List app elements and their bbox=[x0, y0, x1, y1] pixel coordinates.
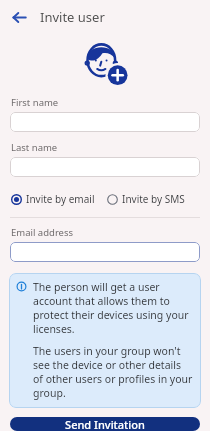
staticText: Invite by SMS bbox=[122, 192, 185, 206]
button[interactable]: Back bbox=[6, 4, 32, 30]
button[interactable] bbox=[10, 242, 200, 262]
staticText: Invite by email bbox=[26, 192, 95, 206]
staticText: Email address bbox=[11, 226, 74, 239]
staticText: Send Invitation bbox=[65, 417, 145, 431]
staticText: The users in your group won't see the de… bbox=[33, 344, 193, 400]
staticText: The person will get a user account that … bbox=[33, 280, 193, 336]
staticText: First name bbox=[11, 96, 59, 109]
button[interactable]: Send Invitation bbox=[10, 417, 200, 431]
staticText: Invite user bbox=[40, 8, 105, 26]
button[interactable]: Invite by email bbox=[10, 190, 96, 208]
staticText: Last name bbox=[11, 141, 58, 154]
button[interactable]: Invite by SMS bbox=[106, 190, 186, 208]
button[interactable] bbox=[10, 157, 200, 177]
button[interactable] bbox=[10, 112, 200, 132]
